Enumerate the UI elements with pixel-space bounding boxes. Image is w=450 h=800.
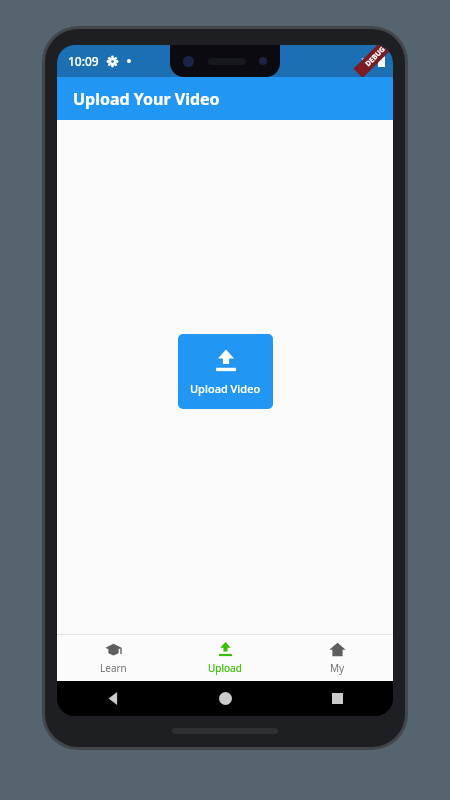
- button[interactable]: Back: [107, 692, 120, 705]
- staticText: DEBUG: [363, 45, 388, 69]
- staticText: Upload Video: [190, 381, 261, 396]
- staticText: Upload: [208, 661, 242, 675]
- staticText: My: [330, 661, 345, 675]
- staticText: 10:09: [68, 53, 99, 69]
- button[interactable]: My: [281, 635, 393, 681]
- staticText: Learn: [100, 661, 127, 675]
- button[interactable]: Learn: [57, 635, 169, 681]
- staticText: Upload Your Video: [73, 88, 220, 110]
- button[interactable]: Upload Video: [178, 334, 273, 409]
- button[interactable]: Upload Your Video: [57, 77, 393, 120]
- button[interactable]: Upload: [169, 635, 281, 681]
- button[interactable]: Home: [219, 692, 232, 705]
